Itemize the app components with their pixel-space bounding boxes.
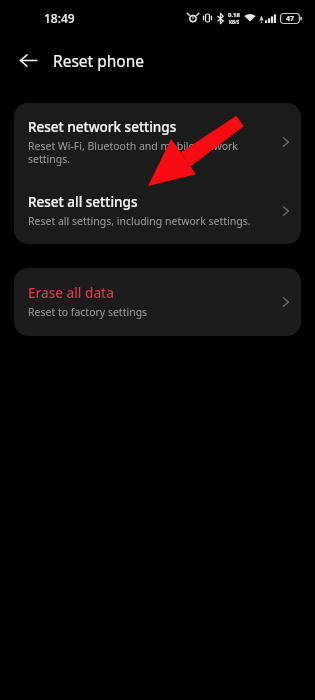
button[interactable]: Reset network settings — [14, 103, 301, 180]
staticText: Reset all settings — [28, 193, 138, 211]
staticText: Reset to factory settings — [28, 305, 148, 319]
staticText: Reset Wi-Fi, Bluetooth and mobile networ… — [28, 139, 275, 166]
staticText: Reset network settings — [28, 118, 177, 136]
staticText: Reset phone — [53, 50, 144, 71]
staticText: Reset all settings, including network se… — [28, 214, 251, 228]
staticText: 47 — [286, 14, 295, 24]
staticText: 18:49 — [44, 10, 75, 26]
staticText: KB/S — [229, 19, 240, 25]
staticText: Erase all data — [28, 284, 115, 302]
button[interactable]: Erase all data — [14, 268, 301, 336]
staticText: 0.18 — [228, 11, 240, 19]
button[interactable]: Reset all settings — [14, 180, 301, 244]
button[interactable]: Back — [10, 42, 46, 78]
